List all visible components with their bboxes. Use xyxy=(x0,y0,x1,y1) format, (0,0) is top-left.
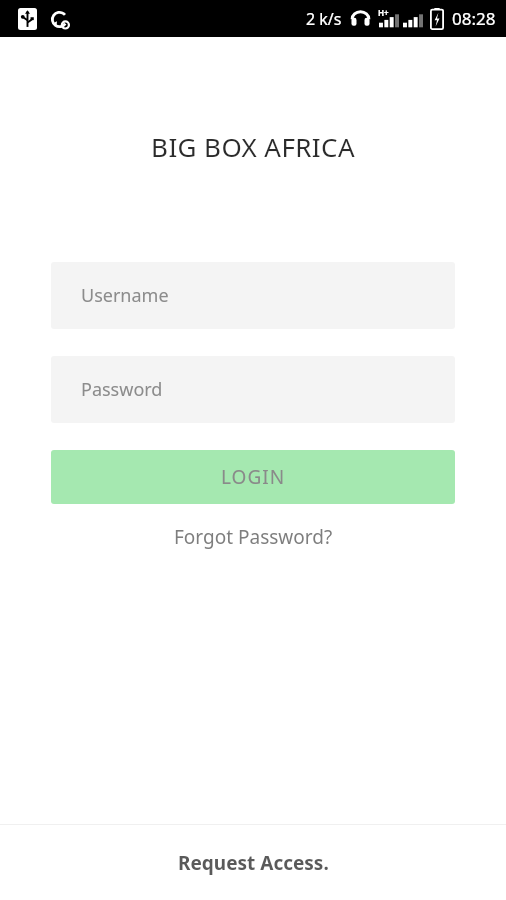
staticText: Forgot Password? xyxy=(174,524,333,550)
button[interactable]: Forgot Password? xyxy=(0,518,506,556)
staticText: 08:28 xyxy=(452,7,496,30)
staticText: H+ xyxy=(378,7,389,18)
button[interactable]: LOGIN xyxy=(51,450,455,504)
staticText: BIG BOX AFRICA xyxy=(0,129,506,164)
staticText: 2 k/s xyxy=(306,8,342,30)
staticText: Username xyxy=(81,283,169,308)
staticText: Request Access. xyxy=(178,850,329,876)
button[interactable]: Password xyxy=(51,356,455,423)
staticText: Password xyxy=(81,377,163,402)
button[interactable]: Request Access. xyxy=(0,825,506,900)
button[interactable]: Username xyxy=(51,262,455,329)
staticText: LOGIN xyxy=(221,464,286,490)
